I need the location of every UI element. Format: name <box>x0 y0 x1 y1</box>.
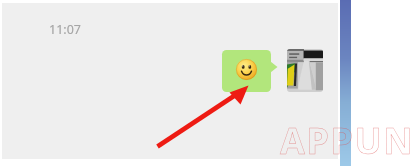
button[interactable]: Photo message <box>287 49 323 92</box>
button[interactable]: Emoji message <box>222 50 278 92</box>
button[interactable]: 11:07 <box>49 21 81 38</box>
staticText: APPUN <box>280 116 415 165</box>
staticText: 11:07 <box>49 21 81 38</box>
